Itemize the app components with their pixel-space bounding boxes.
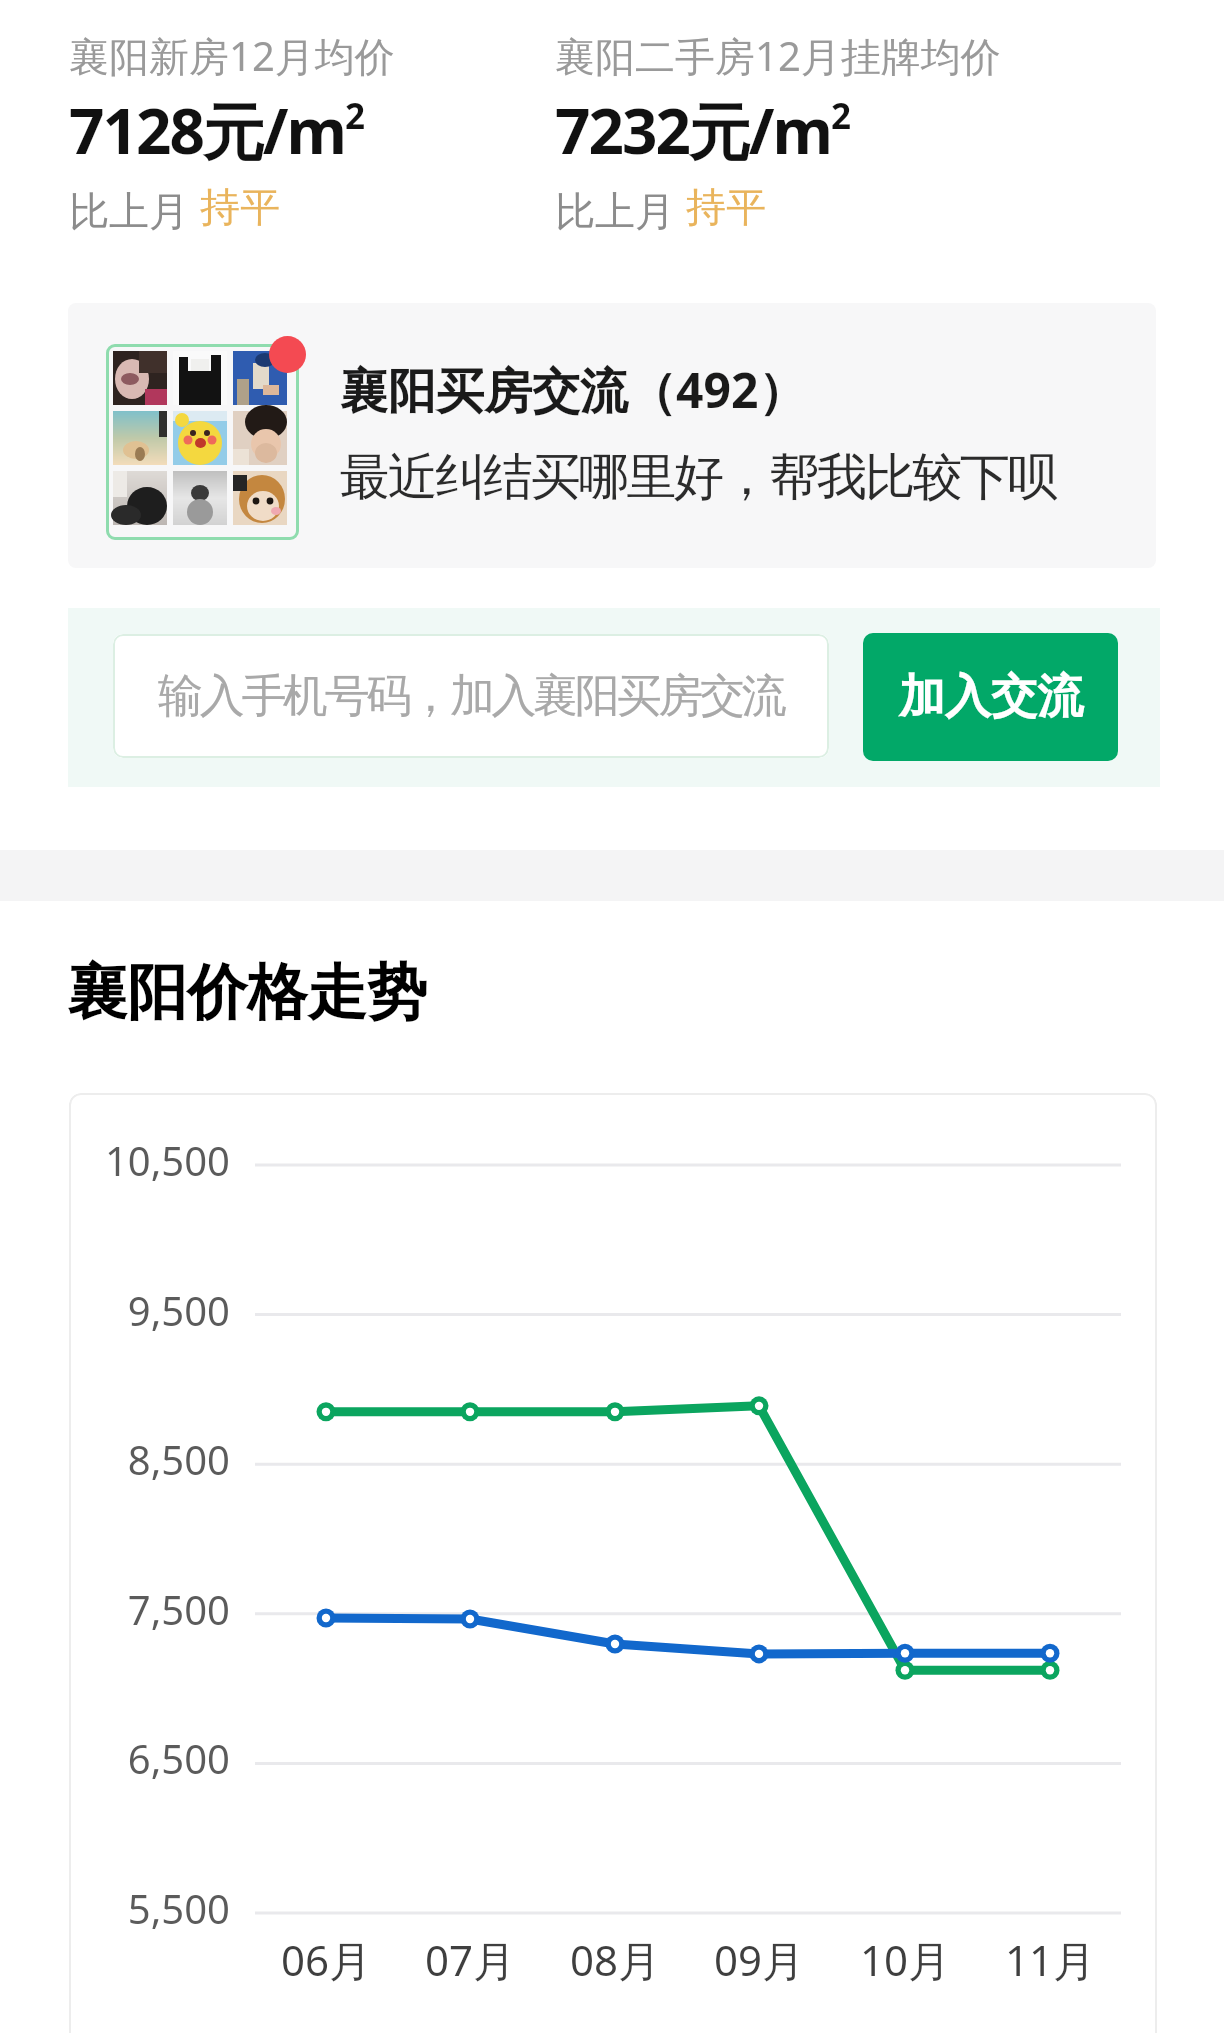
button[interactable]: 襄阳新房12月均价 (69, 28, 555, 237)
staticText: 持平 (200, 182, 280, 232)
staticText: 8,500 (80, 1432, 230, 1486)
button[interactable]: 加入交流 (863, 633, 1118, 761)
staticText: 06月 (251, 1931, 401, 1988)
staticText: 10,500 (80, 1133, 230, 1187)
button[interactable]: 群成员头像，有新消息 (106, 326, 318, 540)
staticText: 7,500 (80, 1582, 230, 1636)
staticText: 11月 (975, 1931, 1125, 1988)
staticText: 加入交流 (899, 668, 1083, 726)
staticText: 持平 (686, 182, 766, 232)
staticText: 7232元/m (555, 88, 832, 173)
staticText: 2 (831, 92, 852, 140)
staticText: 09月 (684, 1931, 834, 1988)
staticText: 襄阳价格走势 (67, 955, 427, 1031)
staticText: 襄阳二手房12月挂牌均价 (555, 28, 1001, 83)
staticText: 5,500 (80, 1881, 230, 1935)
staticText: 襄阳买房交流（492） (340, 357, 807, 423)
staticText: 比上月 (555, 182, 686, 237)
button[interactable]: 襄阳二手房12月挂牌均价 (555, 28, 1041, 237)
staticText: 7128元/m (69, 88, 346, 173)
staticText: 10月 (830, 1931, 980, 1988)
staticText: 襄阳新房12月均价 (69, 28, 395, 83)
staticText: 6,500 (80, 1731, 230, 1785)
staticText: 最近纠结买哪里好，帮我比较下呗 (340, 446, 1056, 509)
staticText: 输入手机号码，加入襄阳买房交流 (158, 668, 784, 725)
staticText: 比上月 (69, 182, 200, 237)
staticText: 9,500 (80, 1283, 230, 1337)
staticText: 2 (345, 92, 366, 140)
staticText: 08月 (540, 1931, 690, 1988)
button[interactable]: 输入手机号码，加入襄阳买房交流 (113, 634, 829, 758)
button[interactable]: 群成员头像，有新消息 (68, 303, 1156, 568)
staticText: 07月 (395, 1931, 545, 1988)
